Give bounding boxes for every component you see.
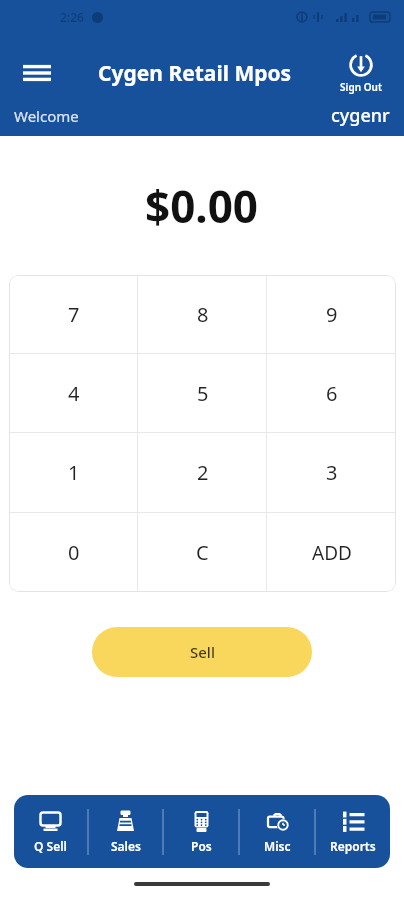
button[interactable]: 4	[9, 354, 138, 432]
staticText: 1	[68, 459, 80, 486]
button[interactable]: 7	[9, 275, 138, 353]
staticText: cygenr	[331, 103, 390, 128]
button[interactable]: Pos	[164, 795, 238, 868]
staticText: Pos	[191, 838, 212, 854]
staticText: $0.00	[145, 176, 259, 236]
button[interactable]: 9	[267, 275, 396, 353]
staticText: 6	[326, 380, 338, 407]
staticText: 2	[197, 459, 209, 486]
button[interactable]: 0	[9, 513, 138, 592]
staticText: Welcome	[14, 106, 79, 126]
staticText: Misc	[264, 838, 291, 854]
button[interactable]: Q Sell	[14, 795, 87, 868]
staticText: 9	[326, 301, 338, 328]
staticText: 2:26	[60, 9, 84, 25]
button[interactable]: 1	[9, 433, 138, 512]
button[interactable]: 3	[267, 433, 396, 512]
button[interactable]: Misc	[240, 795, 314, 868]
staticText: 7	[68, 301, 80, 328]
staticText: 0	[68, 539, 80, 566]
staticText: Sell	[190, 642, 215, 662]
staticText: Reports	[330, 838, 376, 854]
staticText: 3	[326, 459, 338, 486]
staticText: Q Sell	[34, 838, 67, 854]
staticText: 4	[68, 380, 80, 407]
staticText: Sales	[111, 838, 141, 854]
staticText: 8	[197, 301, 209, 328]
button[interactable]: ADD	[267, 513, 396, 592]
button[interactable]: Sales	[89, 795, 162, 868]
staticText: 5	[197, 380, 209, 407]
button[interactable]: 2	[138, 433, 267, 512]
staticText: Sign Out	[340, 80, 382, 94]
button[interactable]: C	[138, 513, 267, 592]
button[interactable]: Sell	[92, 627, 312, 677]
staticText: ADD	[312, 540, 352, 566]
staticText: Cygen Retail Mpos	[98, 59, 292, 88]
staticText: C	[196, 539, 209, 566]
button[interactable]: 8	[138, 275, 267, 353]
button[interactable]: 6	[267, 354, 396, 432]
button[interactable]: 5	[138, 354, 267, 432]
button[interactable]: Sign Out	[330, 52, 392, 94]
button[interactable]: Reports	[316, 795, 390, 868]
button[interactable]: Menu	[14, 50, 60, 96]
